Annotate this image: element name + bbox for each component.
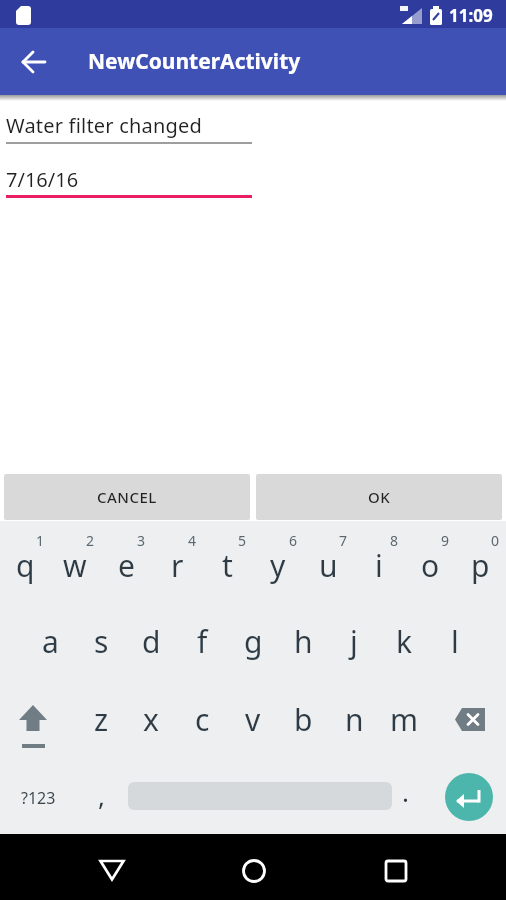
button[interactable]: c [177, 695, 227, 743]
button[interactable]: v [228, 695, 278, 743]
button[interactable] [372, 846, 422, 896]
staticText: u [319, 545, 338, 586]
button[interactable]: o [405, 541, 455, 589]
button[interactable]: q [0, 541, 50, 589]
staticText: t [222, 545, 233, 586]
staticText: 8 [390, 531, 399, 549]
button[interactable] [445, 773, 493, 821]
staticText: i [375, 545, 383, 586]
button[interactable]: m [379, 695, 429, 743]
button[interactable]: z [76, 695, 126, 743]
staticText: a [42, 621, 59, 662]
button[interactable]: w [50, 541, 100, 589]
button[interactable]: u [303, 541, 353, 589]
staticText: q [16, 545, 35, 586]
staticText: p [471, 545, 490, 586]
staticText: k [396, 621, 413, 662]
staticText: o [421, 545, 440, 586]
staticText: 7/16/16 [6, 166, 79, 192]
button[interactable]: , [88, 778, 114, 812]
staticText: 11:09 [449, 4, 493, 26]
button[interactable]: r [152, 541, 202, 589]
staticText: NewCounterActivity [88, 47, 301, 76]
button[interactable]: CANCEL [4, 474, 250, 520]
staticText: r [171, 545, 184, 586]
button[interactable]: j [329, 617, 379, 665]
button[interactable]: 7/16/16 [6, 166, 266, 192]
staticText: y [270, 545, 286, 586]
button[interactable]: e [101, 541, 151, 589]
button[interactable] [228, 846, 278, 896]
staticText: l [451, 621, 459, 662]
button[interactable]: f [177, 617, 227, 665]
button[interactable]: y [253, 541, 303, 589]
button[interactable]: n [329, 695, 379, 743]
button[interactable]: d [126, 617, 176, 665]
button[interactable]: s [76, 617, 126, 665]
button[interactable]: . [392, 774, 418, 808]
button[interactable]: ?123 [12, 784, 64, 812]
staticText: x [143, 699, 159, 740]
staticText: j [350, 621, 358, 662]
staticText: 3 [137, 531, 146, 549]
staticText: e [118, 545, 135, 586]
staticText: ?123 [21, 787, 56, 809]
staticText: 0 [491, 531, 500, 549]
staticText: 6 [289, 531, 298, 549]
staticText: 5 [238, 531, 247, 549]
staticText: b [294, 699, 313, 740]
button[interactable]: k [379, 617, 429, 665]
staticText: d [142, 621, 161, 662]
button[interactable]: a [25, 617, 75, 665]
staticText: s [94, 621, 109, 662]
button[interactable] [444, 695, 500, 743]
button[interactable] [87, 846, 137, 896]
staticText: Water filter changed [6, 112, 202, 138]
button[interactable] [14, 42, 54, 82]
staticText: 4 [188, 531, 197, 549]
button[interactable]: OK [256, 474, 502, 520]
staticText: v [245, 699, 261, 740]
staticText: h [294, 621, 313, 662]
button[interactable]: g [228, 617, 278, 665]
button[interactable]: l [430, 617, 480, 665]
staticText: . [402, 774, 409, 808]
staticText: f [197, 621, 208, 662]
button[interactable]: p [455, 541, 505, 589]
staticText: g [244, 621, 263, 662]
staticText: 1 [36, 531, 45, 549]
staticText: n [345, 699, 364, 740]
button[interactable]: Water filter changed [6, 112, 286, 138]
staticText: OK [368, 487, 391, 507]
button[interactable]: h [278, 617, 328, 665]
button[interactable]: t [202, 541, 252, 589]
button[interactable]: x [126, 695, 176, 743]
button[interactable]: b [278, 695, 328, 743]
staticText: CANCEL [97, 487, 157, 507]
staticText: 2 [86, 531, 95, 549]
staticText: 7 [339, 531, 348, 549]
button[interactable]: i [354, 541, 404, 589]
staticText: w [63, 545, 87, 586]
staticText: c [195, 699, 210, 740]
button[interactable] [8, 695, 64, 751]
staticText: z [94, 699, 109, 740]
staticText: 9 [441, 531, 450, 549]
staticText: , [98, 778, 105, 812]
staticText: m [390, 699, 419, 740]
